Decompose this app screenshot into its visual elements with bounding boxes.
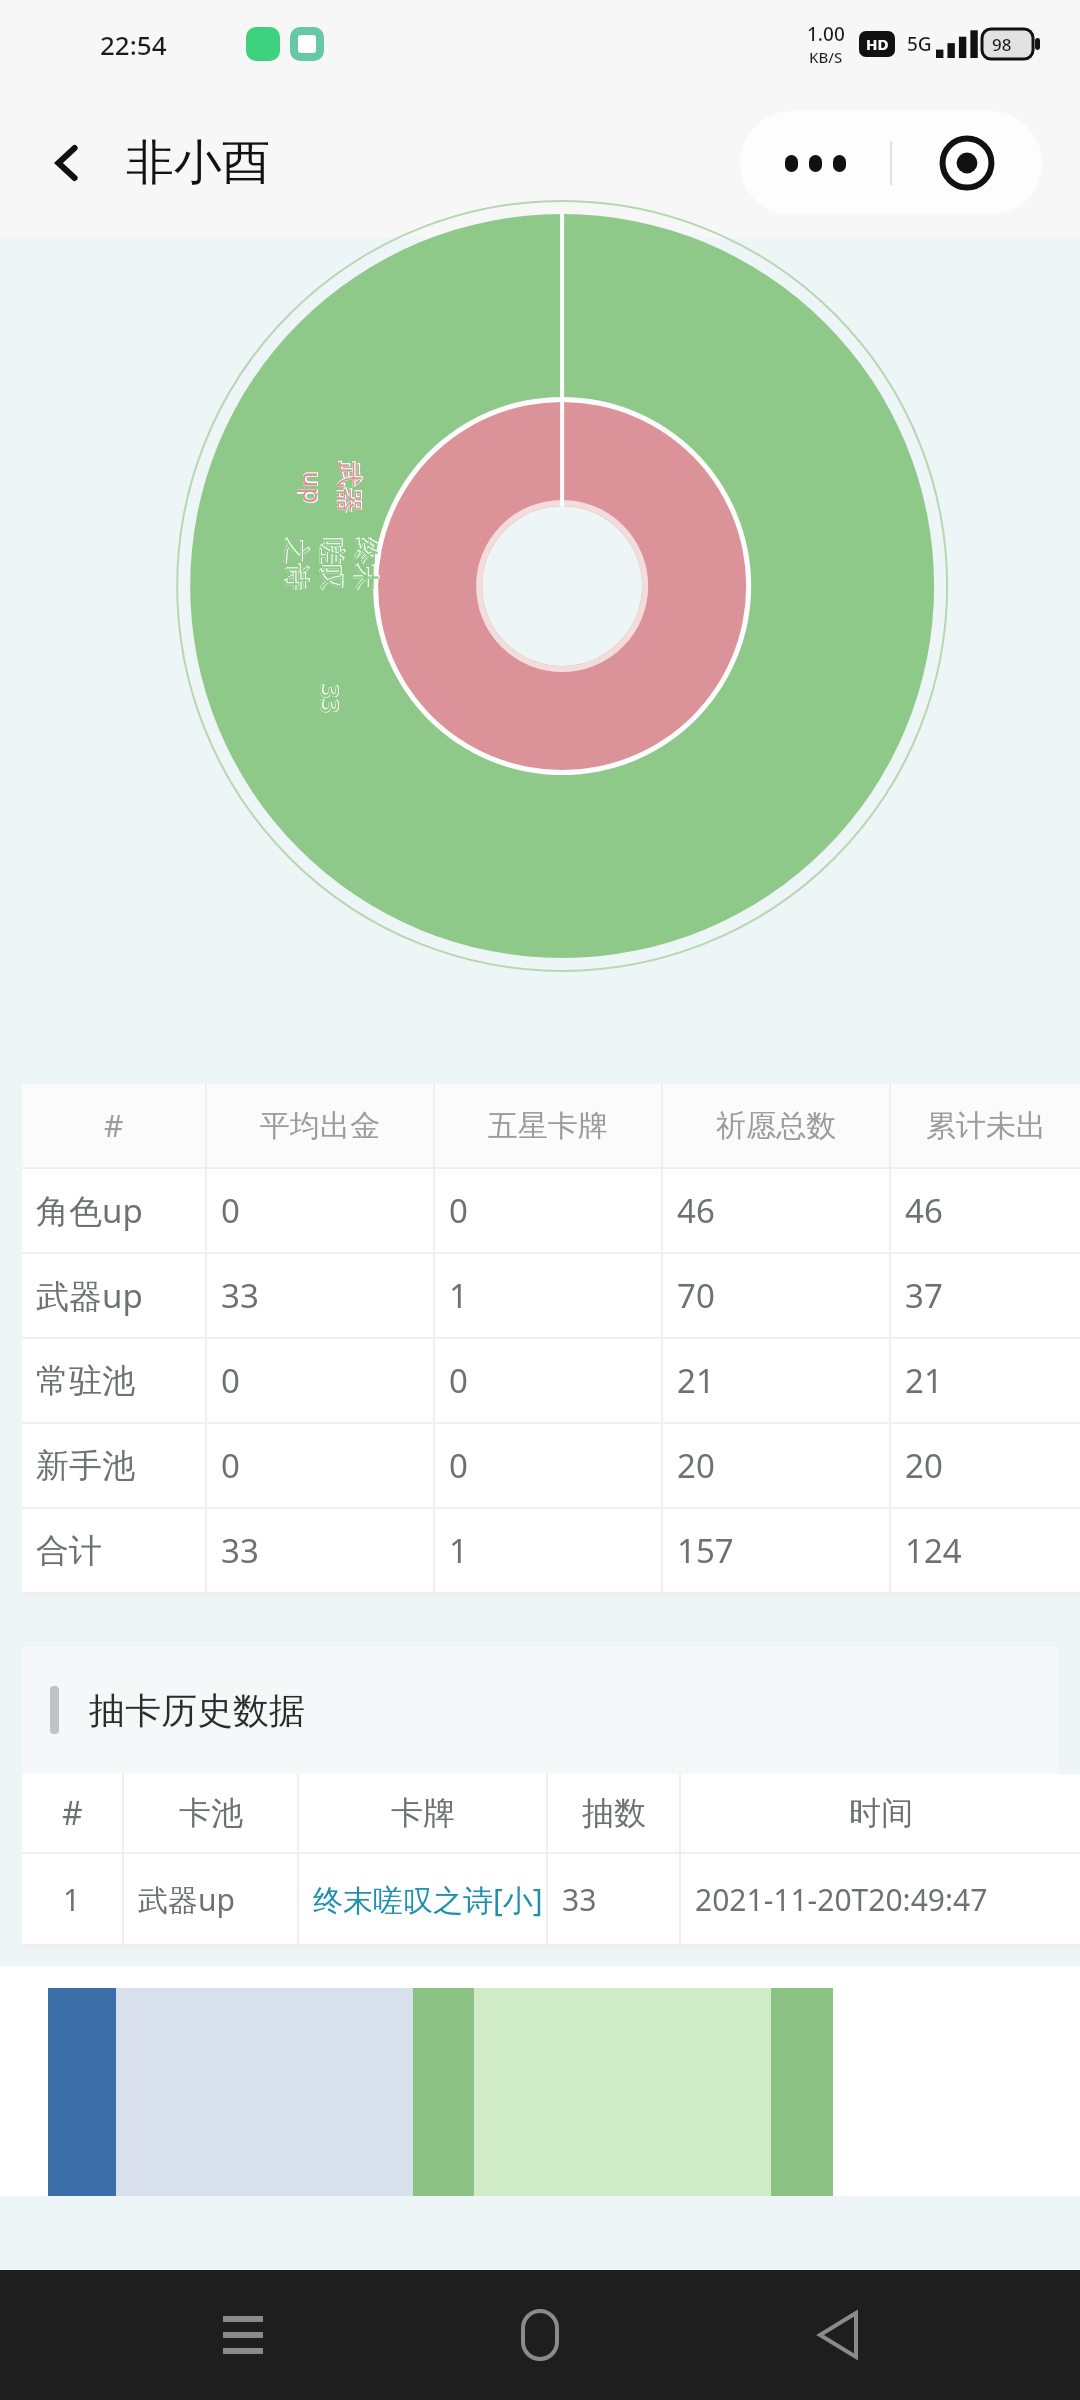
staticText: 1 [449, 1273, 468, 1318]
staticText: 0 [221, 1188, 240, 1233]
staticText: 角色up [36, 1188, 143, 1233]
button[interactable]: Home [485, 2280, 595, 2390]
staticText: 33 [312, 683, 347, 713]
staticText: 33 [312, 683, 347, 713]
staticText: 武器up [36, 1273, 143, 1318]
staticText: 常驻池 [36, 1360, 135, 1402]
staticText: 卡池 [179, 1793, 243, 1833]
staticText: 0 [449, 1358, 468, 1403]
staticText: 终末嗟叹之诗 [278, 534, 381, 594]
staticText: 祈愿总数 [716, 1107, 836, 1145]
staticText: 157 [677, 1528, 734, 1573]
staticText: 46 [905, 1188, 943, 1233]
staticText: 合计 [36, 1530, 102, 1572]
staticText: 时间 [849, 1793, 913, 1833]
staticText: 33 [221, 1528, 259, 1573]
staticText: 0 [449, 1188, 468, 1233]
staticText: 新手池 [36, 1445, 135, 1487]
staticText: 1.00 [807, 21, 845, 47]
staticText: # [104, 1105, 124, 1146]
staticText: 20 [677, 1443, 715, 1488]
staticText: 5G [907, 31, 932, 57]
button[interactable]: More [740, 111, 890, 215]
staticText: 21 [905, 1358, 943, 1403]
staticText: 33 [221, 1273, 259, 1318]
staticText: 抽卡历史数据 [89, 1688, 305, 1733]
staticText: 20 [905, 1443, 943, 1488]
staticText: 平均出金 [260, 1107, 380, 1145]
staticText: 武器up [295, 457, 364, 517]
staticText: 98 [992, 33, 1012, 56]
staticText: 124 [905, 1528, 962, 1573]
staticText: 终末嗟叹之诗 [278, 534, 381, 594]
staticText: 70 [677, 1273, 715, 1318]
staticText: 33 [562, 1879, 597, 1920]
staticText: 五星卡牌 [488, 1107, 608, 1145]
button[interactable]: Recent apps [188, 2280, 298, 2390]
staticText: 0 [449, 1443, 468, 1488]
button[interactable]: Back [783, 2280, 893, 2390]
staticText: # [62, 1791, 83, 1835]
staticText: 22:54 [100, 27, 167, 62]
staticText: 0 [221, 1443, 240, 1488]
staticText: 21 [677, 1358, 715, 1403]
staticText: 37 [905, 1273, 943, 1318]
staticText: 2021-11-20T20:49:47 [695, 1879, 988, 1920]
staticText: 非小酉 [126, 133, 270, 193]
staticText: HD [866, 34, 889, 54]
staticText: 1 [63, 1879, 81, 1920]
staticText: 抽数 [582, 1793, 646, 1833]
staticText: KB/S [809, 47, 843, 67]
button[interactable]: Back [30, 125, 106, 201]
staticText: 累计未出 [926, 1107, 1046, 1145]
staticText: 卡牌 [391, 1793, 455, 1833]
staticText: 0 [221, 1358, 240, 1403]
staticText: 武器up [295, 457, 364, 517]
button[interactable]: Close [892, 111, 1042, 215]
staticText: 1 [449, 1528, 468, 1573]
staticText: 武器up [138, 1879, 235, 1920]
staticText: 终末嗟叹之诗[小] [313, 1879, 543, 1920]
staticText: 46 [677, 1188, 715, 1233]
